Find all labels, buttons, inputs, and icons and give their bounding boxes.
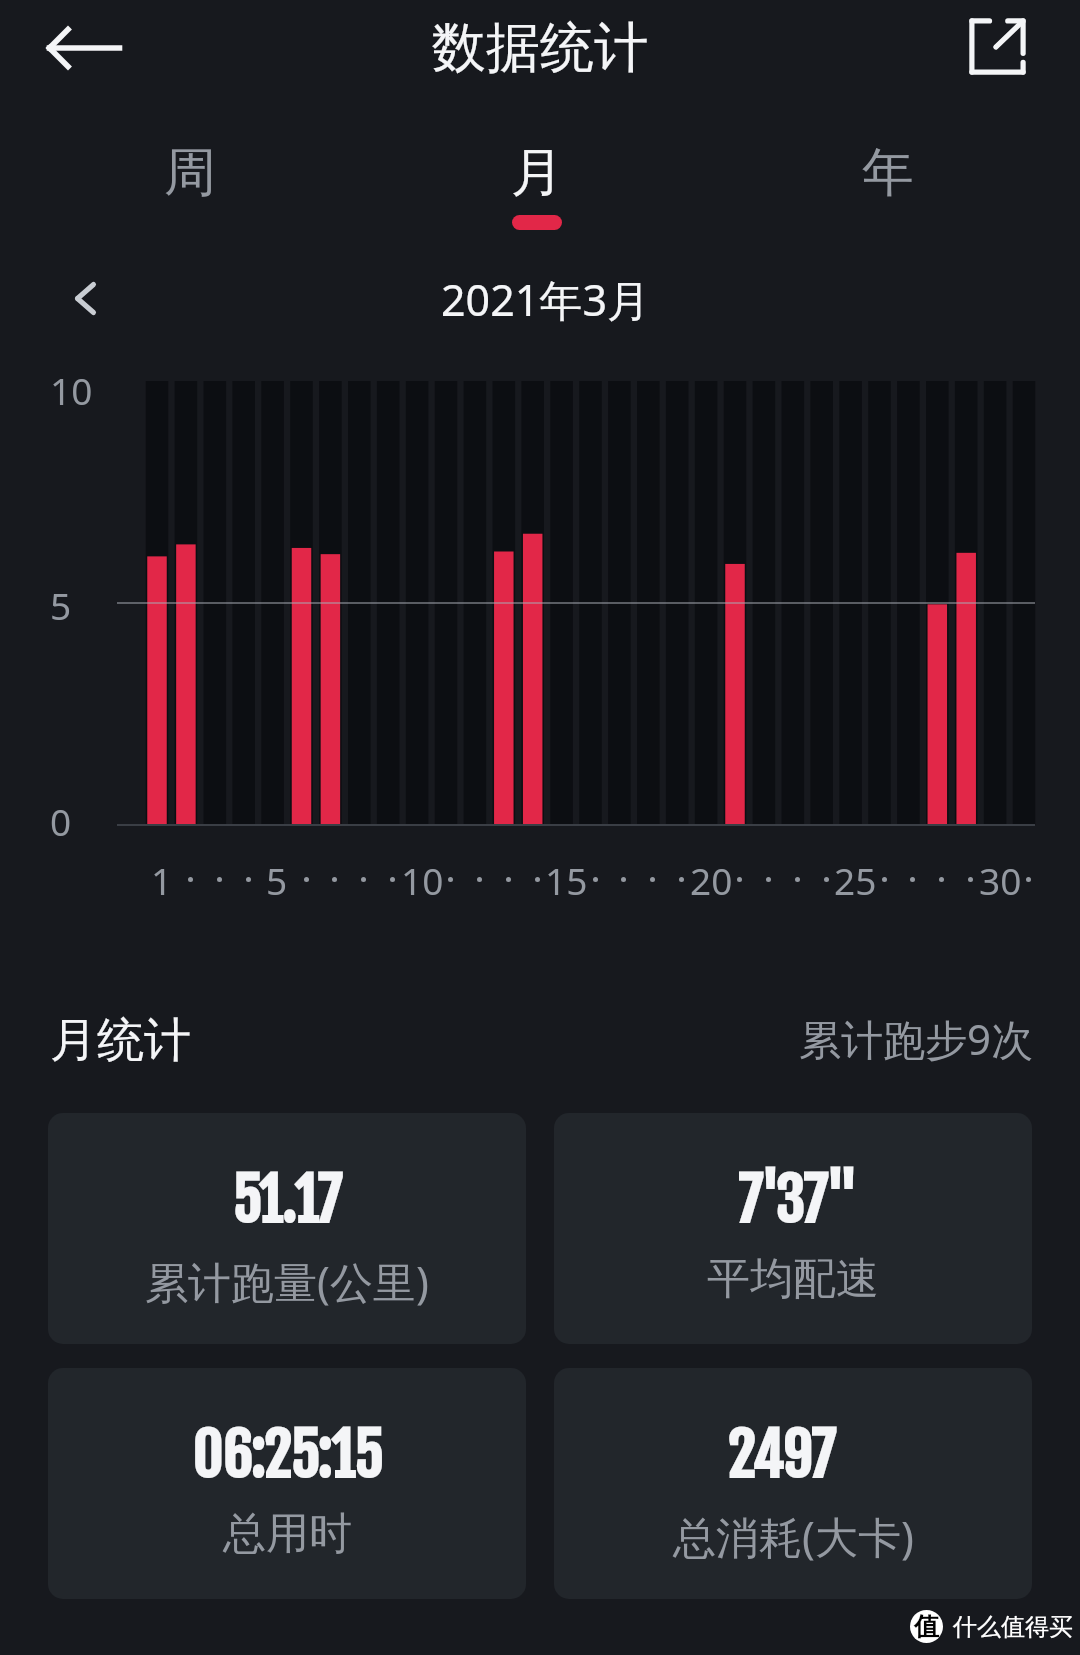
staticText: 5: [50, 580, 72, 630]
staticText: 值: [914, 1611, 939, 1642]
button[interactable]: 2497: [554, 1368, 1032, 1599]
staticText: 51.17: [232, 1164, 342, 1237]
button[interactable]: Back: [20, 2, 148, 94]
staticText: 累计跑步9次: [799, 1010, 1034, 1067]
button[interactable]: 周: [70, 110, 310, 246]
button[interactable]: 月: [417, 110, 657, 246]
staticText: 月: [511, 140, 563, 206]
staticText: 10: [50, 365, 93, 415]
staticText: 月统计: [50, 1011, 191, 1070]
staticText: 5: [266, 855, 288, 905]
staticText: 累计跑量(公里): [145, 1252, 429, 1311]
staticText: 年: [862, 140, 914, 206]
staticText: 总消耗(大卡): [673, 1507, 914, 1566]
staticText: 15: [545, 855, 588, 905]
button[interactable]: 51.17: [48, 1113, 526, 1344]
button[interactable]: 06:25:15: [48, 1368, 526, 1599]
staticText: 数据统计: [432, 14, 648, 82]
staticText: 06:25:15: [192, 1419, 383, 1492]
staticText: 10: [401, 855, 444, 905]
staticText: 2021年3月: [441, 270, 650, 329]
staticText: 0: [50, 796, 72, 846]
staticText: 平均配速: [707, 1252, 879, 1306]
button[interactable]: 7'37": [554, 1113, 1032, 1344]
staticText: 25: [834, 855, 877, 905]
staticText: 1: [151, 855, 173, 905]
staticText: 7'37": [738, 1164, 857, 1237]
staticText: 周: [164, 140, 216, 206]
staticText: 2497: [727, 1419, 835, 1492]
button[interactable]: Previous month: [44, 258, 126, 338]
staticText: 20: [690, 855, 733, 905]
staticText: 30: [979, 855, 1022, 905]
staticText: 什么值得买: [953, 1612, 1073, 1642]
button[interactable]: Share: [949, 0, 1046, 93]
staticText: 总用时: [223, 1507, 352, 1561]
button[interactable]: 年: [768, 110, 1008, 246]
